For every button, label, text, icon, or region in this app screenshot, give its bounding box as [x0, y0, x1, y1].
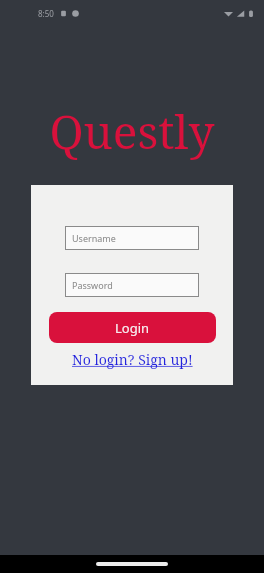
button[interactable]: Username — [65, 226, 199, 250]
staticText: Login — [115, 319, 150, 337]
button[interactable]: No login? Sign up! — [68, 349, 197, 370]
staticText: No login? Sign up! — [72, 350, 193, 369]
staticText: Password — [72, 279, 113, 291]
button[interactable]: Password — [65, 273, 199, 297]
staticText: 8:50 — [38, 8, 54, 19]
staticText: Username — [72, 232, 116, 244]
button[interactable]: Login — [49, 312, 216, 343]
staticText: Questly — [0, 100, 264, 163]
